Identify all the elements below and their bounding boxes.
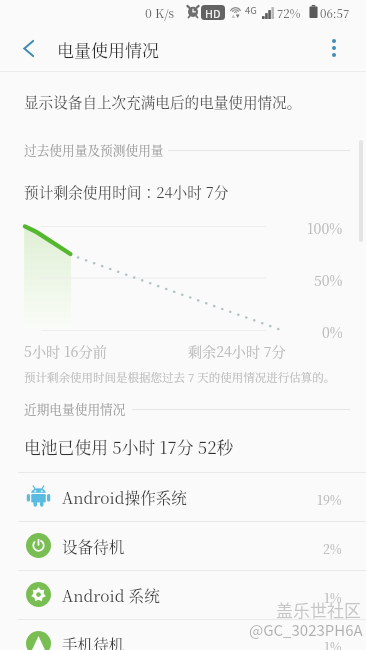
staticText: Android 系统	[62, 584, 160, 606]
button[interactable]: Android 系统	[0, 570, 366, 619]
staticText: 过去使用量及预测使用量	[24, 140, 164, 158]
staticText: 1%	[324, 589, 342, 607]
staticText: 预计剩余使用时间是根据您过去 7 天的使用情况进行估算的。	[24, 369, 336, 386]
staticText: 100%	[307, 218, 343, 238]
staticText: 盖乐世社区	[276, 597, 361, 622]
staticText: 2%	[323, 540, 342, 558]
staticText: 电量使用情况	[57, 37, 159, 61]
staticText: 预计剩余使用时间：24小时 7分	[24, 181, 229, 202]
staticText: Android操作系统	[62, 486, 187, 508]
staticText: 0%	[322, 322, 343, 342]
staticText: 0 K/s	[145, 4, 175, 22]
staticText: 1%	[324, 638, 342, 650]
staticText: HD	[205, 5, 221, 20]
button[interactable]: More options	[318, 24, 350, 72]
button[interactable]: Android操作系统	[0, 472, 366, 521]
staticText: @GC_3023PH6A	[249, 619, 363, 641]
staticText: 电池已使用 5小时 17分 52秒	[24, 435, 234, 459]
staticText: 5小时 16分前	[24, 341, 107, 361]
staticText: 19%	[317, 491, 342, 509]
staticText: 近期电量使用情况	[24, 399, 126, 417]
button[interactable]: 手机待机	[0, 619, 366, 650]
staticText: 4G	[245, 3, 257, 17]
button[interactable]: Back	[8, 24, 48, 72]
staticText: 剩余24小时 7分	[188, 341, 286, 361]
button[interactable]: 设备待机	[0, 521, 366, 570]
staticText: 手机待机	[62, 633, 125, 650]
staticText: 50%	[314, 270, 343, 290]
staticText: 显示设备自上次充满电后的电量使用情况。	[24, 91, 302, 112]
staticText: 06:57	[320, 5, 350, 22]
staticText: 72%	[277, 5, 301, 22]
staticText: 设备待机	[62, 535, 125, 557]
